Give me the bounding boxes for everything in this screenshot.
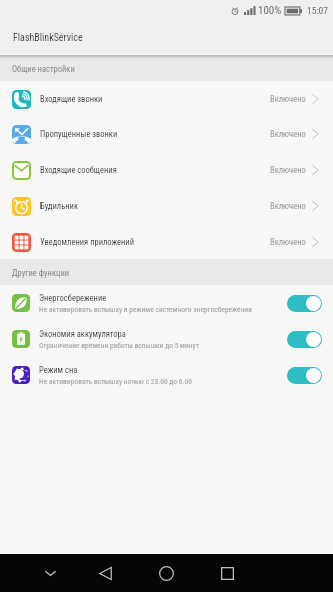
staticText: Ограничение времени работы вспышки до 5 … xyxy=(39,341,199,350)
staticText: Входящие сообщения xyxy=(40,165,270,175)
staticText: Другие функции xyxy=(12,268,70,278)
button[interactable]: Режим сна xyxy=(0,357,333,393)
button[interactable]: Входящие звонки xyxy=(0,81,333,117)
button[interactable]: Уведомления приложений xyxy=(0,224,333,260)
button[interactable]: Back xyxy=(83,554,128,592)
staticText: Энергосбережение xyxy=(39,293,107,303)
staticText: 100% xyxy=(258,4,282,17)
staticText: Будильник xyxy=(40,201,270,211)
staticText: Включено xyxy=(270,165,306,175)
staticText: Общие настройки xyxy=(12,64,75,74)
staticText: Уведомления приложений xyxy=(40,237,270,247)
button[interactable]: Будильник xyxy=(0,188,333,224)
staticText: Включено xyxy=(270,94,306,104)
button[interactable]: Входящие сообщения xyxy=(0,152,333,188)
staticText: Включено xyxy=(270,201,306,211)
button[interactable]: Toggle Режим сна xyxy=(287,367,322,384)
button[interactable]: Home xyxy=(144,554,189,592)
button[interactable]: Recent apps xyxy=(205,554,250,592)
staticText: FlashBlinkService xyxy=(13,32,83,44)
button[interactable]: Toggle Энергосбережение xyxy=(287,295,322,312)
staticText: Не активировать вспышку ночью с 23.00 до… xyxy=(39,377,192,386)
staticText: Пропущенные звонки xyxy=(40,129,270,139)
staticText: Включено xyxy=(270,129,306,139)
staticText: Не активировать вспышку в режиме системн… xyxy=(39,305,252,314)
staticText: 15:07 xyxy=(307,5,328,16)
button[interactable]: Toggle Экономия аккумулятора xyxy=(287,331,322,348)
staticText: Экономия аккумулятора xyxy=(39,329,126,339)
button[interactable]: Пропущенные звонки xyxy=(0,116,333,152)
button[interactable]: Hide navigation bar xyxy=(28,554,72,592)
button[interactable]: Энергосбережение xyxy=(0,285,333,321)
button[interactable]: Экономия аккумулятора xyxy=(0,321,333,357)
staticText: Входящие звонки xyxy=(40,94,270,104)
staticText: Включено xyxy=(270,237,306,247)
staticText: Режим сна xyxy=(39,365,78,375)
